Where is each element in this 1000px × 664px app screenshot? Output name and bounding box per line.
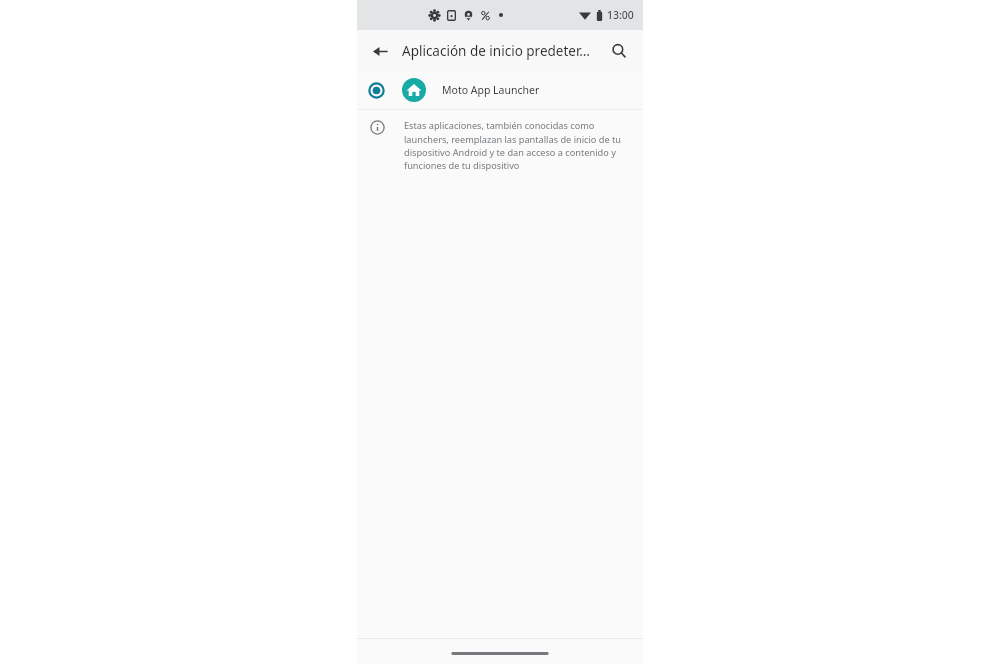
button[interactable]: Moto App Launcher (357, 71, 643, 109)
button[interactable]: Back (365, 36, 395, 66)
button[interactable]: Search (604, 36, 634, 66)
staticText: Moto App Launcher (442, 83, 540, 97)
staticText: Aplicación de inicio predeter… (402, 42, 604, 60)
staticText: 13:00 (607, 8, 634, 22)
staticText: Estas aplicaciones, también conocidas co… (404, 119, 626, 171)
